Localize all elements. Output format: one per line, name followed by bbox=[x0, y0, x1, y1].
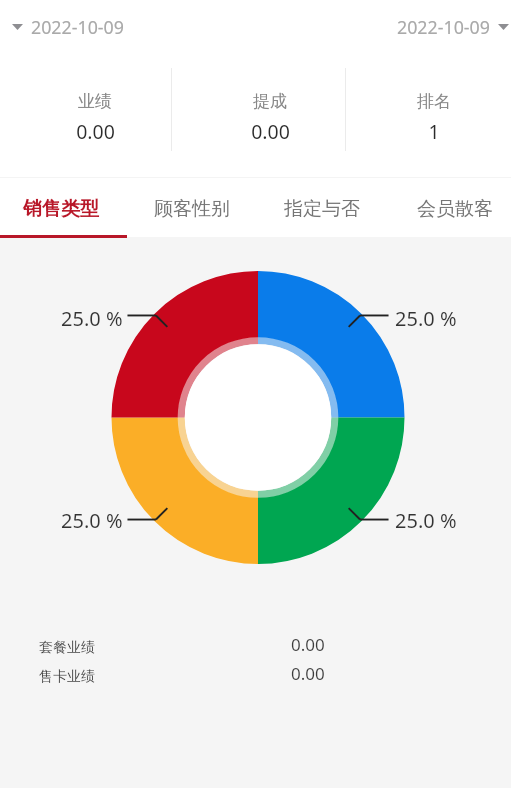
staticText: 套餐业绩 bbox=[39, 639, 95, 657]
staticText: 顾客性别 bbox=[154, 197, 230, 221]
staticText: 提成 bbox=[253, 91, 287, 112]
staticText: 0.00 bbox=[291, 662, 325, 684]
staticText: 0.00 bbox=[251, 118, 290, 145]
staticText: 25.0 % bbox=[61, 305, 123, 332]
button[interactable]: 排名 bbox=[359, 60, 509, 155]
staticText: 25.0 % bbox=[395, 305, 457, 332]
staticText: 业绩 bbox=[78, 91, 112, 112]
staticText: 2022-10-09 bbox=[397, 15, 490, 39]
staticText: 售卡业绩 bbox=[39, 668, 95, 686]
button[interactable]: 2022-10-09 bbox=[391, 10, 511, 44]
button[interactable]: 售卡业绩 bbox=[0, 666, 511, 688]
staticText: 排名 bbox=[417, 91, 451, 112]
staticText: 25.0 % bbox=[395, 507, 457, 534]
button[interactable]: 会员散客 bbox=[390, 197, 511, 243]
staticText: 销售类型 bbox=[23, 197, 99, 221]
staticText: 0.00 bbox=[76, 118, 115, 145]
button[interactable]: 2022-10-09 bbox=[6, 10, 130, 44]
button[interactable]: 套餐业绩 bbox=[0, 637, 511, 659]
button[interactable]: 提成 bbox=[195, 60, 345, 155]
button[interactable]: 销售类型 pie chart, four equal 25% slices bbox=[111, 271, 405, 565]
staticText: 1 bbox=[428, 118, 440, 145]
button[interactable]: 业绩 bbox=[20, 60, 170, 155]
staticText: 0.00 bbox=[291, 633, 325, 655]
staticText: 会员散客 bbox=[417, 197, 493, 221]
staticText: 指定与否 bbox=[284, 197, 360, 221]
button[interactable]: 顾客性别 bbox=[127, 197, 257, 243]
staticText: 2022-10-09 bbox=[31, 15, 124, 39]
button[interactable]: 指定与否 bbox=[257, 197, 387, 243]
staticText: 25.0 % bbox=[61, 507, 123, 534]
button[interactable]: 销售类型 bbox=[0, 197, 126, 243]
